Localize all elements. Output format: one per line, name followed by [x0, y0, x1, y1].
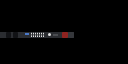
button[interactable]: App: [62, 32, 68, 38]
